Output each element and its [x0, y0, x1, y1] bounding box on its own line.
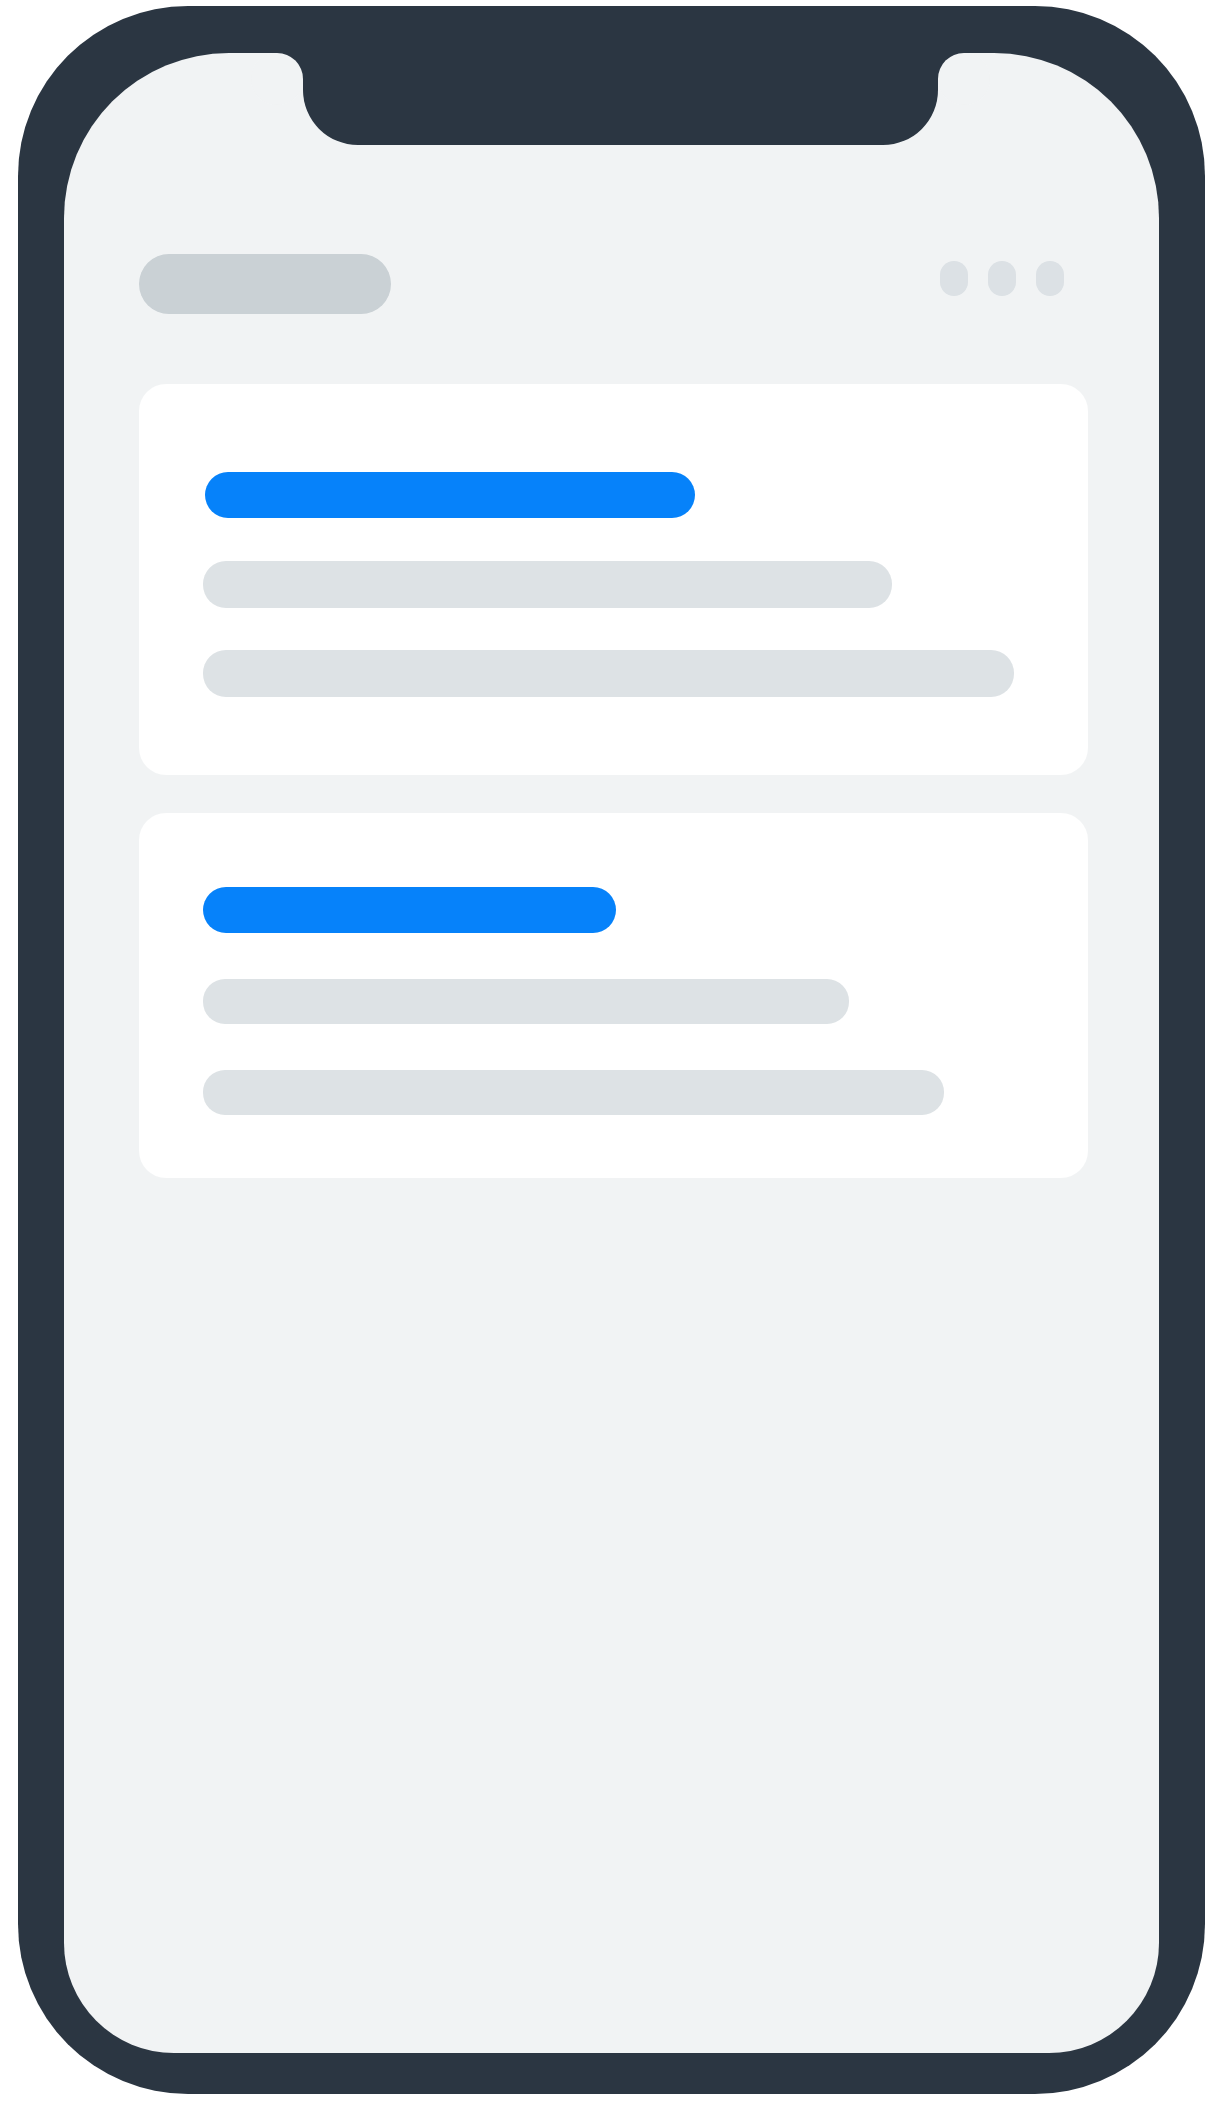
button[interactable] — [988, 261, 1016, 296]
button[interactable] — [1036, 261, 1064, 296]
button[interactable] — [139, 813, 1088, 1178]
button[interactable] — [940, 261, 968, 296]
button[interactable] — [139, 254, 391, 314]
button[interactable] — [139, 384, 1088, 775]
